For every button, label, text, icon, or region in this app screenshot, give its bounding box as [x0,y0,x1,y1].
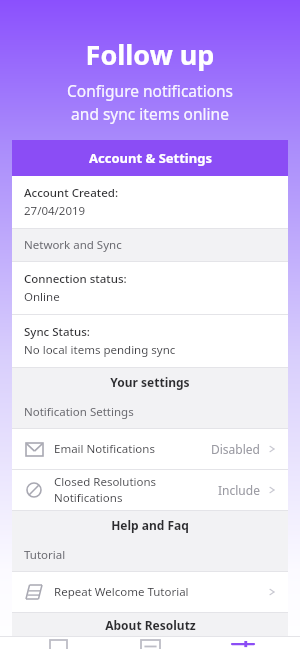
staticText: Online [24,289,60,305]
button[interactable]: Connection status: [12,262,288,314]
button[interactable]: Settings tab [208,636,278,649]
button[interactable]: Notification Settings [12,396,288,428]
staticText: Sync Status: [24,324,90,340]
other: Repeat welcome tutorial [26,585,42,599]
other: Closed resolutions notifications [26,482,42,498]
button[interactable]: Sync Status: [12,315,288,367]
staticText: Closed Resolutions [54,474,157,490]
staticText: Network and Sync [24,237,122,253]
staticText: Repeat Welcome Tutorial [54,584,189,600]
staticText: Follow up [0,36,300,73]
button[interactable]: Tab [23,636,93,649]
button[interactable]: Account & Settings [12,140,288,176]
button[interactable]: Account Created: [12,176,288,228]
button[interactable]: Network and Sync [12,229,288,261]
button[interactable]: Repeat welcome tutorial [12,572,288,612]
staticText: and sync items online [0,103,300,124]
staticText: Notifications [54,490,123,506]
staticText: About Resolutz [105,617,196,633]
staticText: Email Notifications [54,441,155,457]
button[interactable]: Closed resolutions notifications [12,470,288,510]
staticText: Configure notifications [0,80,300,101]
staticText: Disabled [211,441,260,457]
staticText: Tutorial [24,547,66,563]
staticText: Help and Faq [111,517,189,533]
staticText: Account & Settings [89,149,212,167]
staticText: Connection status: [24,271,127,287]
staticText: No local items pending sync [24,342,176,358]
staticText: Notification Settings [24,404,134,420]
button[interactable]: Email notifications [12,429,288,469]
staticText: Your settings [110,374,190,390]
button[interactable]: Tutorial [12,539,288,571]
staticText: 27/04/2019 [24,203,86,219]
staticText: Account Created: [24,185,119,201]
other: Email notifications [26,443,43,456]
button[interactable]: Tab [115,636,185,649]
staticText: Include [218,482,260,498]
